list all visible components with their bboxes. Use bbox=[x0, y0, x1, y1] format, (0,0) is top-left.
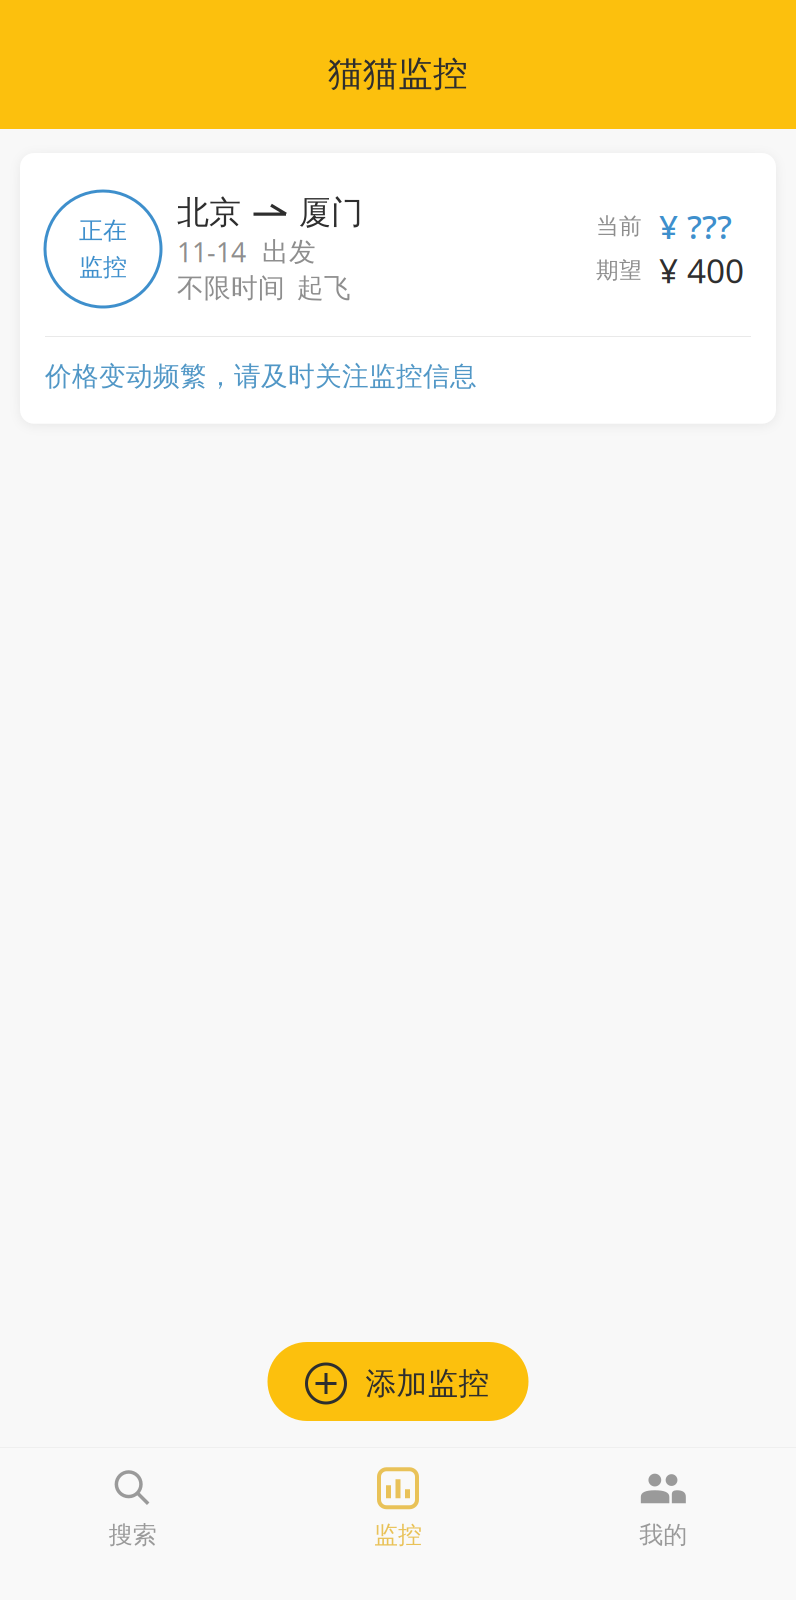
staticText: 监控 bbox=[374, 1520, 422, 1550]
button[interactable]: 添加监控 bbox=[267, 1342, 528, 1421]
staticText: 搜索 bbox=[109, 1520, 157, 1550]
staticText: 厦门 bbox=[299, 193, 363, 232]
button[interactable]: 搜索 bbox=[0, 1455, 265, 1592]
staticText: 我的 bbox=[639, 1520, 687, 1550]
staticText: 11-14 bbox=[177, 234, 246, 270]
staticText: 添加监控 bbox=[365, 1365, 489, 1402]
staticText: 起飞 bbox=[297, 272, 351, 304]
staticText: 不限时间 bbox=[177, 272, 285, 304]
staticText: 期望 bbox=[596, 256, 642, 284]
staticText: 猫猫监控 bbox=[328, 53, 468, 95]
staticText: 北京 bbox=[177, 193, 241, 232]
staticText: 正在 bbox=[79, 216, 127, 245]
staticText: 出发 bbox=[262, 236, 316, 268]
button[interactable]: 正在 bbox=[20, 153, 776, 424]
button[interactable]: 我的 bbox=[531, 1455, 796, 1592]
staticText: ¥ ??? bbox=[659, 204, 732, 248]
button[interactable]: 监控 bbox=[265, 1455, 531, 1592]
staticText: ¥ 400 bbox=[659, 248, 744, 293]
staticText: 当前 bbox=[596, 212, 642, 240]
staticText: 价格变动频繁，请及时关注监控信息 bbox=[45, 360, 477, 393]
staticText: 监控 bbox=[79, 252, 127, 282]
